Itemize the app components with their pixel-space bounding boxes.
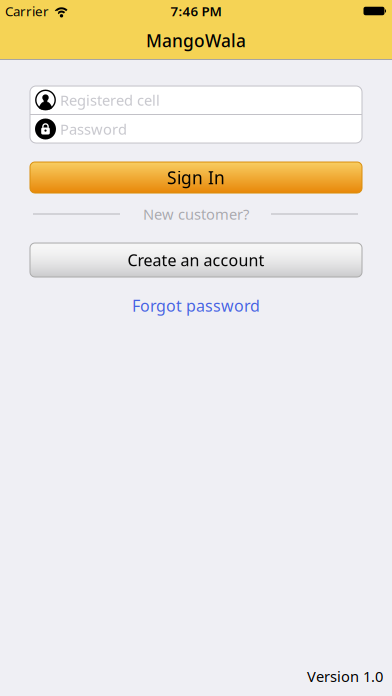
staticText: MangoWala — [146, 29, 246, 52]
staticText: Forgot password — [132, 295, 260, 316]
button[interactable]: Forgot password — [132, 295, 260, 316]
button[interactable]: Password — [30, 115, 362, 143]
staticText: Create an account — [127, 249, 264, 271]
button[interactable]: Sign In — [30, 162, 362, 193]
button[interactable]: Create an account — [30, 243, 362, 277]
button[interactable]: Registered cell — [30, 86, 362, 114]
staticText: Password — [60, 119, 127, 139]
staticText: Sign In — [167, 166, 225, 189]
staticText: Version 1.0 — [307, 666, 383, 686]
staticText: New customer? — [143, 204, 249, 224]
staticText: Carrier — [5, 2, 49, 20]
staticText: Registered cell — [60, 90, 160, 110]
staticText: 7:46 PM — [170, 2, 221, 20]
